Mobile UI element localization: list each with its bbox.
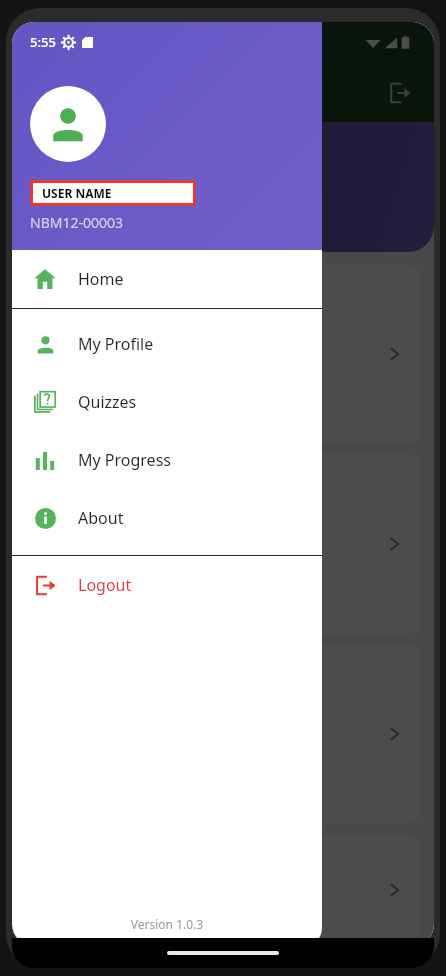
staticText: Home (78, 268, 124, 290)
button[interactable]: Module title (26, 454, 420, 634)
staticText: Module title (44, 282, 136, 302)
button[interactable]: Logout (12, 556, 322, 614)
staticText: Learn more about content and: (44, 500, 235, 518)
staticText: Learn more about content and: (44, 518, 235, 536)
staticText: My Profile (78, 333, 154, 355)
button[interactable]: Home (12, 250, 322, 308)
button[interactable]: Module title (26, 834, 420, 946)
staticText: Learn more about content and: (44, 916, 235, 928)
button[interactable]: Logout (380, 73, 420, 113)
staticText: Version 1.0.3 (12, 916, 322, 932)
button[interactable]: My Progress (12, 431, 322, 489)
staticText: Learn more about content and: (44, 554, 235, 572)
staticText: Learn more about content and: (44, 346, 235, 364)
staticText: USER NAME (42, 185, 112, 201)
staticText: Learn more about content and: (44, 328, 235, 346)
staticText: 5:55 (30, 33, 56, 51)
button[interactable]: Module title (26, 264, 420, 444)
button[interactable]: About (12, 489, 322, 547)
staticText: Quizzes (26, 80, 97, 106)
staticText: Quizzes (78, 391, 137, 413)
staticText: NBM12-00003 (30, 213, 124, 232)
staticText: My Progress (78, 449, 171, 471)
staticText: Logout (78, 574, 132, 596)
staticText: Learn more about content and: (44, 382, 235, 400)
staticText: About (78, 507, 124, 529)
button[interactable]: Module title (26, 644, 420, 824)
button[interactable]: Quizzes (12, 373, 322, 431)
button[interactable]: My Profile (12, 315, 322, 373)
